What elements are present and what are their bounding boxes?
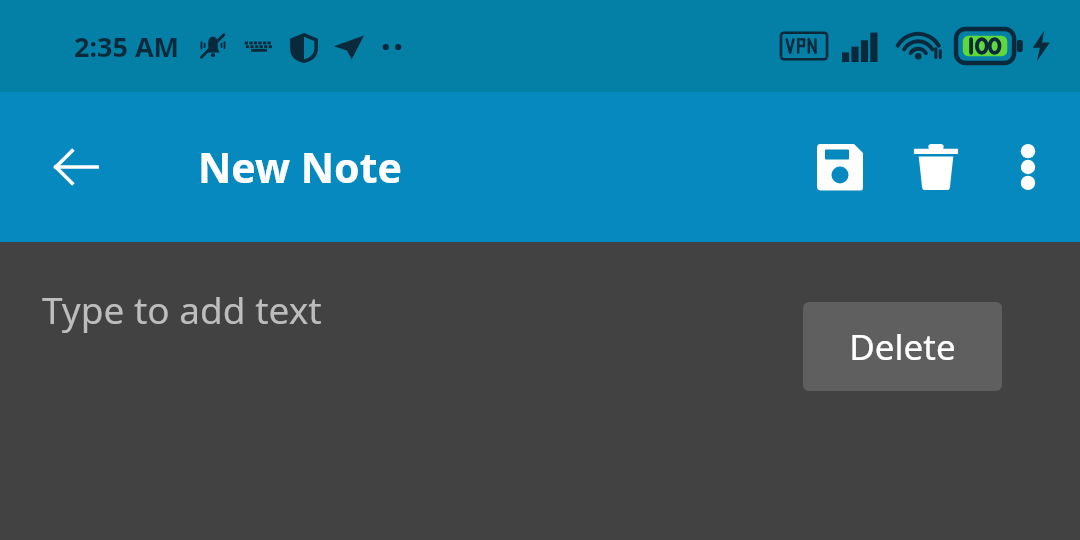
button[interactable]: More options: [984, 123, 1072, 211]
button[interactable]: Delete: [803, 302, 1002, 391]
button[interactable]: Delete note: [888, 119, 984, 215]
button[interactable]: Back: [32, 123, 120, 211]
button[interactable]: Save: [792, 119, 888, 215]
staticText: New Note: [198, 139, 402, 195]
staticText: Type to add text: [42, 284, 322, 334]
staticText: Delete: [849, 323, 956, 371]
button[interactable]: Type to add text: [0, 242, 1080, 540]
staticText: 2:35 AM: [74, 28, 180, 65]
